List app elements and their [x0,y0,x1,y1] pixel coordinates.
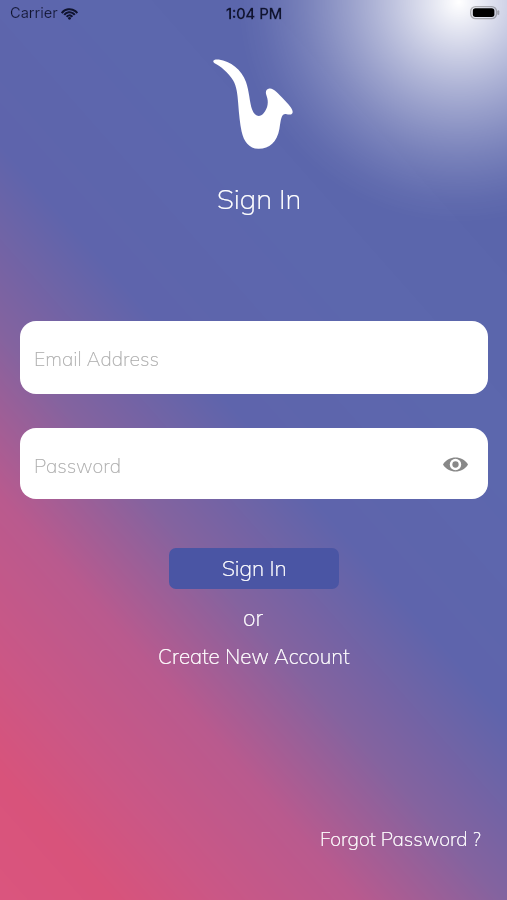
button[interactable]: Sign In [169,548,339,589]
button[interactable]: Forgot Password ? [316,824,486,856]
staticText: 1:04 PM [226,5,283,23]
staticText: Email Address [34,347,160,371]
staticText: Carrier [10,4,58,22]
staticText: Create New Account [158,643,350,669]
button[interactable]: Password [20,428,488,499]
staticText: Forgot Password ? [320,827,481,851]
button[interactable]: Show password [438,447,472,481]
button[interactable]: Create New Account [150,640,358,674]
staticText: Sign In [217,181,302,216]
staticText: or [243,603,264,631]
staticText: Password [34,454,122,478]
staticText: Sign In [222,555,287,582]
button[interactable]: Email Address [20,321,488,394]
